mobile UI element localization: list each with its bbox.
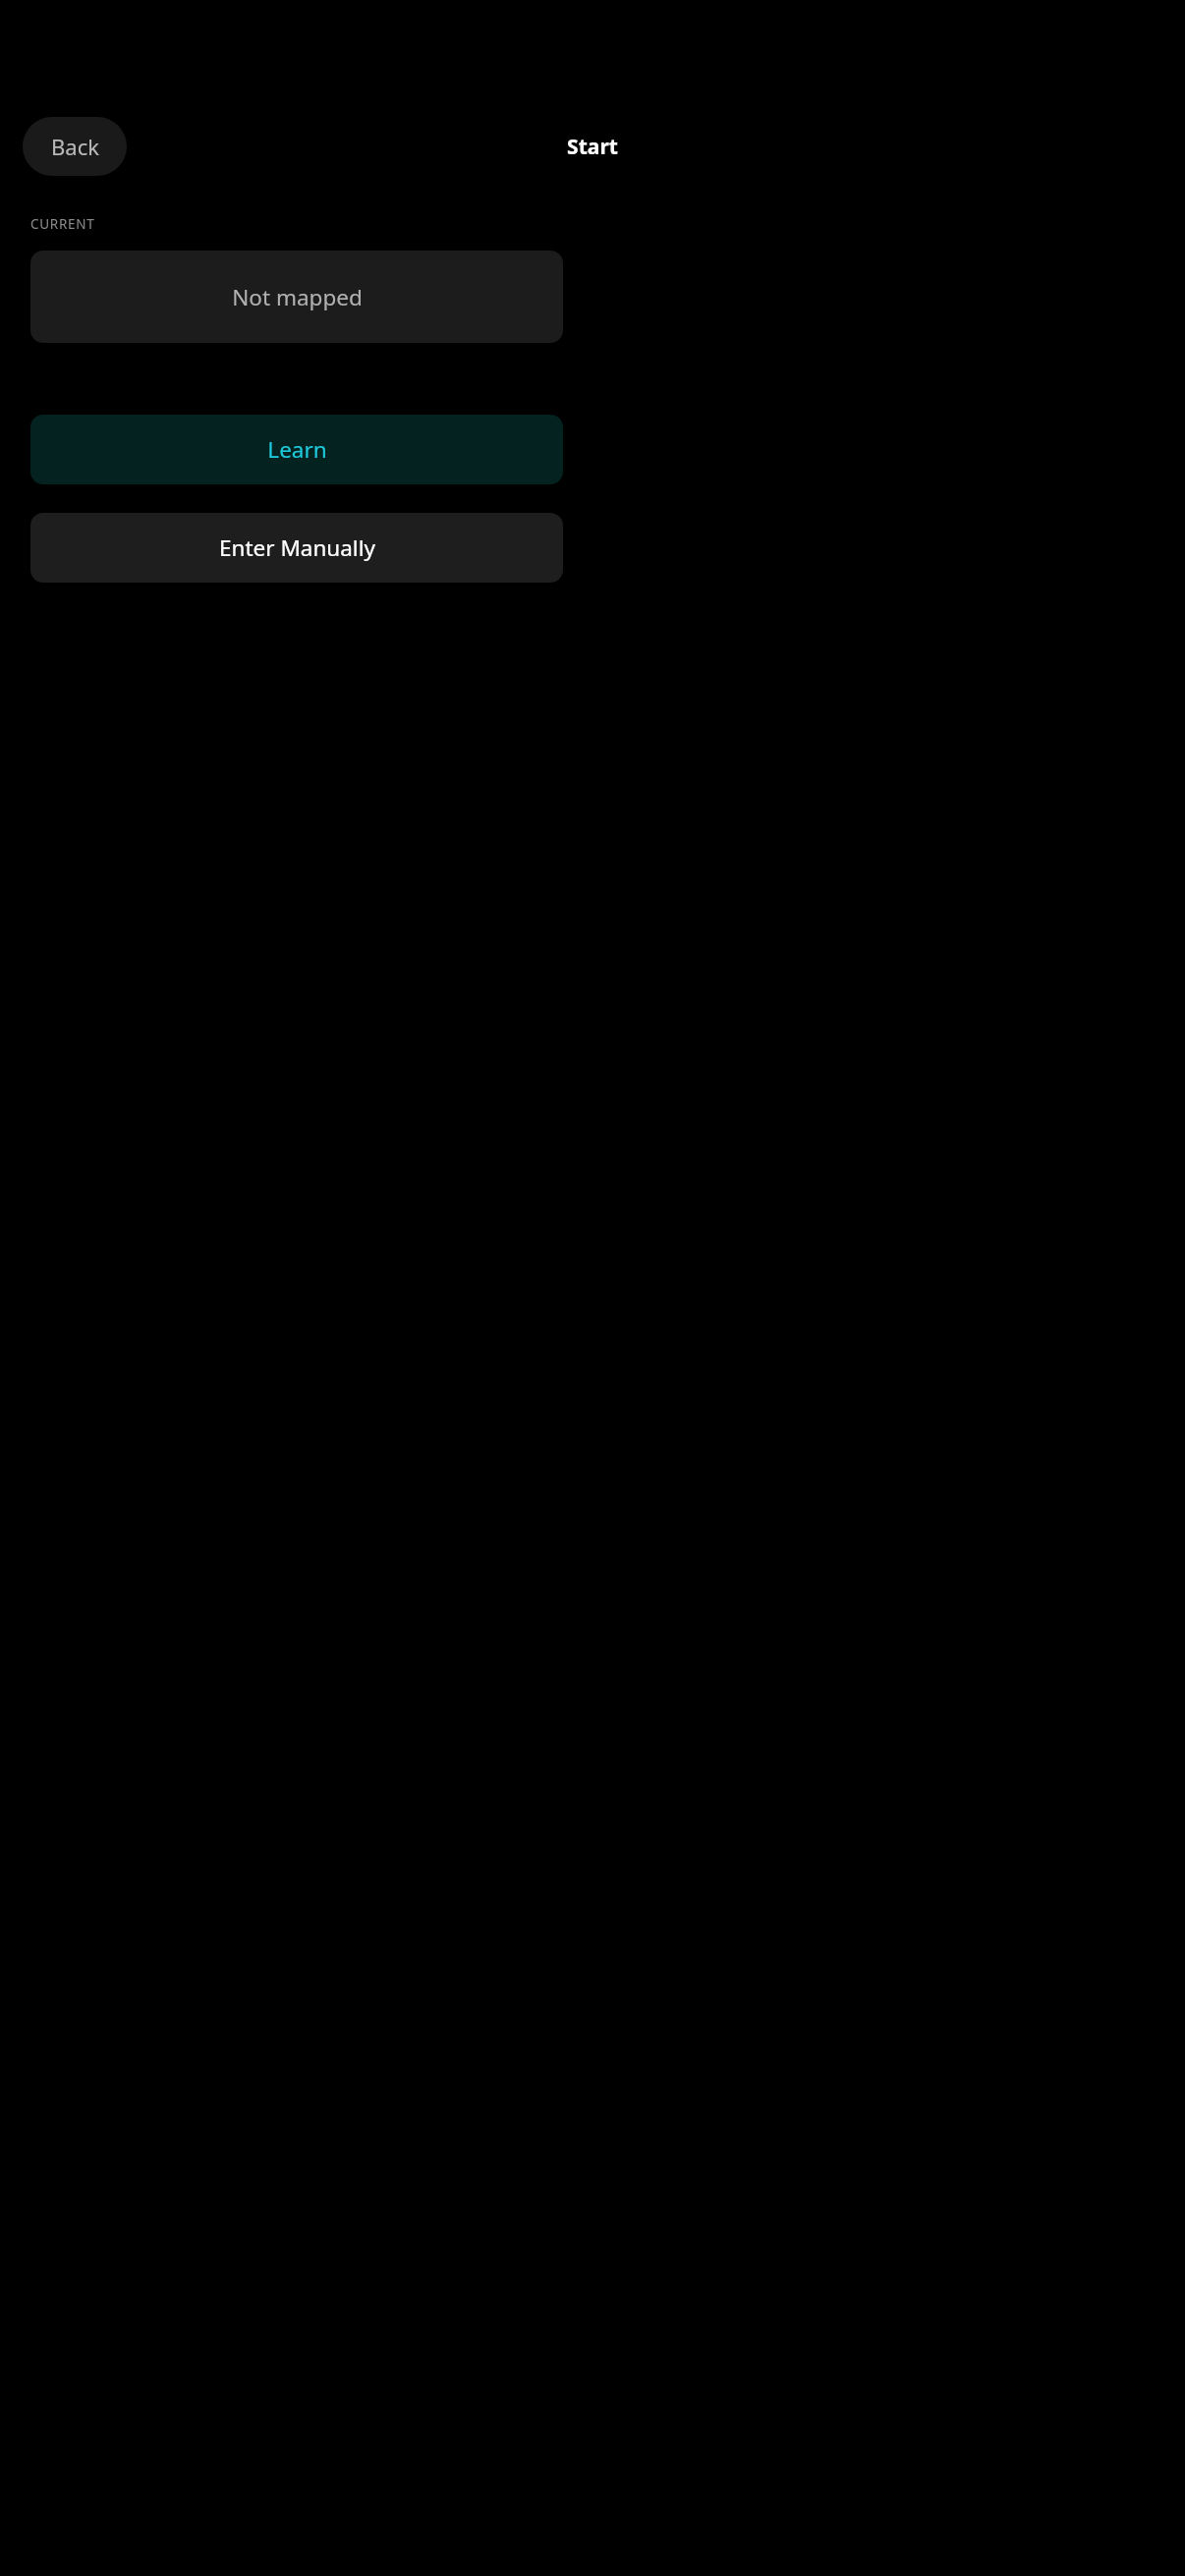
- staticText: Back: [51, 132, 99, 161]
- staticText: Start: [567, 133, 618, 161]
- staticText: Learn: [267, 434, 327, 465]
- staticText: CURRENT: [30, 215, 95, 233]
- staticText: Not mapped: [232, 282, 363, 312]
- staticText: Enter Manually: [219, 532, 375, 563]
- button[interactable]: Back: [23, 117, 127, 176]
- button[interactable]: Learn: [30, 415, 563, 484]
- button[interactable]: Enter Manually: [30, 513, 563, 583]
- button[interactable]: Not mapped: [30, 251, 563, 343]
